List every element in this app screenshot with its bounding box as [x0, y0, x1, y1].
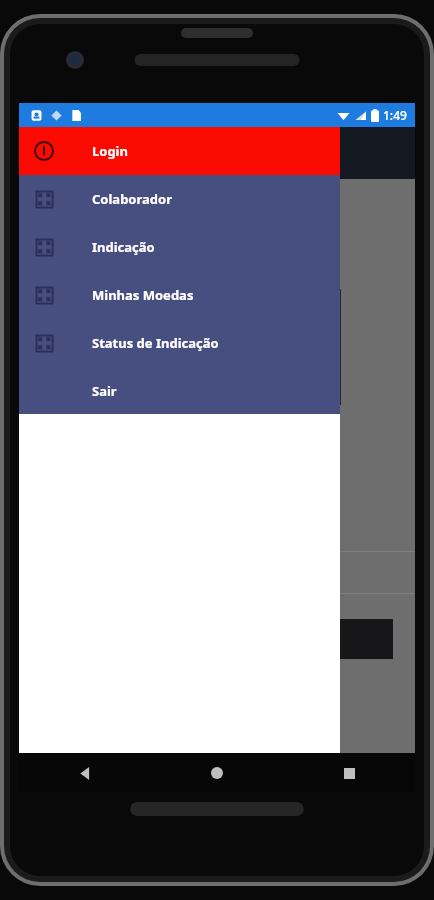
button[interactable]: Sair	[19, 367, 340, 414]
staticText: Status de Indicação	[92, 334, 219, 352]
button[interactable]: Login	[19, 127, 340, 175]
staticText: Indicação	[92, 238, 155, 256]
button[interactable]	[311, 619, 393, 659]
staticText: Login	[92, 142, 128, 160]
button[interactable]: Recent apps	[283, 753, 415, 793]
staticText: Sair	[92, 382, 117, 400]
staticText: Minhas Moedas	[92, 286, 194, 304]
button[interactable]: Back	[19, 753, 151, 793]
button[interactable]: Minhas Moedas	[19, 271, 340, 319]
button[interactable]: Status de Indicação	[19, 319, 340, 367]
staticText: Colaborador	[92, 190, 172, 208]
button[interactable]: Indicação	[19, 223, 340, 271]
button[interactable]: Home	[151, 753, 283, 793]
staticText: 1:49	[383, 107, 407, 123]
button[interactable]: Colaborador	[19, 175, 340, 223]
